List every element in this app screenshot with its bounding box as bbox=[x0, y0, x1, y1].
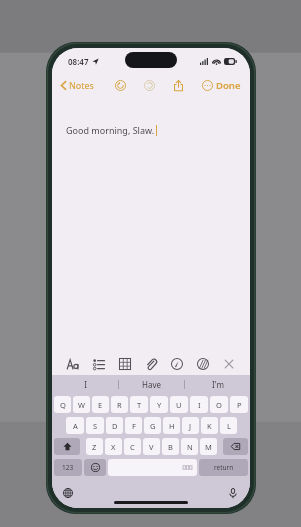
button[interactable]: More options bbox=[199, 77, 215, 93]
button[interactable]: O bbox=[210, 396, 228, 413]
button[interactable]: Y bbox=[150, 396, 168, 413]
staticText: P bbox=[237, 400, 242, 410]
staticText: Done bbox=[216, 79, 241, 92]
button[interactable]: D bbox=[106, 417, 123, 434]
staticText: Notes bbox=[69, 79, 94, 91]
staticText: H bbox=[169, 421, 175, 431]
button[interactable]: I bbox=[190, 396, 208, 413]
staticText: I bbox=[198, 400, 201, 410]
button[interactable]: Table bbox=[115, 354, 135, 374]
staticText: L bbox=[227, 421, 231, 431]
staticText: E bbox=[98, 400, 103, 410]
button[interactable]: P bbox=[230, 396, 248, 413]
button[interactable]: Dictate bbox=[225, 485, 241, 501]
button[interactable]: Shift bbox=[54, 438, 80, 455]
staticText: I bbox=[84, 379, 87, 390]
staticText: N bbox=[187, 442, 193, 452]
staticText: G bbox=[150, 421, 156, 431]
button[interactable]: 123 bbox=[54, 459, 82, 476]
button[interactable]: C bbox=[124, 438, 141, 455]
button[interactable]: F bbox=[125, 417, 142, 434]
button[interactable]: Attach bbox=[141, 354, 161, 374]
button[interactable]: I bbox=[52, 375, 118, 394]
button[interactable]: T bbox=[130, 396, 148, 413]
button[interactable]: M bbox=[200, 438, 217, 455]
button[interactable]: B bbox=[162, 438, 179, 455]
button[interactable]: N bbox=[181, 438, 198, 455]
button[interactable]: Good morning, Slaw. bbox=[52, 96, 250, 353]
button[interactable]: Redo bbox=[141, 77, 157, 93]
staticText: T bbox=[137, 400, 142, 410]
staticText: R bbox=[117, 400, 122, 410]
button[interactable]: Text format bbox=[63, 354, 83, 374]
button[interactable]: Checklist bbox=[89, 354, 109, 374]
staticText: J bbox=[189, 421, 192, 431]
button[interactable]: Share bbox=[170, 77, 186, 93]
staticText: F bbox=[132, 421, 136, 431]
button[interactable]: W bbox=[73, 396, 90, 413]
button[interactable]: Markup bbox=[167, 354, 187, 374]
button[interactable]: Close keyboard bbox=[219, 354, 239, 374]
button[interactable]: Done bbox=[207, 76, 250, 95]
button[interactable]: J bbox=[182, 417, 199, 434]
button[interactable]: Switch keyboard bbox=[60, 485, 76, 501]
button[interactable]: L bbox=[220, 417, 237, 434]
button[interactable]: Backspace bbox=[223, 438, 248, 455]
button[interactable]: R bbox=[111, 396, 128, 413]
button[interactable]: I'm bbox=[185, 375, 250, 394]
button[interactable]: Z bbox=[86, 438, 103, 455]
button[interactable]: Undo bbox=[112, 77, 128, 93]
staticText: B bbox=[168, 442, 173, 452]
button[interactable]: H bbox=[163, 417, 180, 434]
staticText: M bbox=[205, 442, 212, 452]
staticText: 123 bbox=[62, 463, 74, 472]
staticText: return bbox=[214, 463, 234, 472]
button[interactable]: S bbox=[86, 417, 104, 434]
button[interactable]: return bbox=[199, 459, 248, 476]
button[interactable]: Notes bbox=[52, 76, 100, 94]
button[interactable]: X bbox=[105, 438, 122, 455]
staticText: X bbox=[111, 442, 116, 452]
staticText: Y bbox=[157, 400, 162, 410]
button[interactable]: Draw bbox=[193, 354, 213, 374]
button[interactable]: Emoji bbox=[84, 459, 106, 476]
staticText: Good morning, Slaw. bbox=[66, 124, 155, 136]
button[interactable]: G bbox=[144, 417, 161, 434]
staticText: U bbox=[176, 400, 182, 410]
staticText: C bbox=[130, 442, 135, 452]
button[interactable]: K bbox=[201, 417, 218, 434]
button[interactable] bbox=[108, 459, 197, 476]
staticText: D bbox=[112, 421, 118, 431]
staticText: Z bbox=[92, 442, 97, 452]
button[interactable]: Have bbox=[119, 375, 184, 394]
button[interactable]: Q bbox=[54, 396, 71, 413]
button[interactable]: V bbox=[143, 438, 160, 455]
staticText: W bbox=[78, 400, 85, 410]
button[interactable]: E bbox=[92, 396, 109, 413]
staticText: V bbox=[149, 442, 154, 452]
staticText: Have bbox=[142, 379, 161, 390]
staticText: A bbox=[73, 421, 78, 431]
button[interactable]: U bbox=[170, 396, 188, 413]
button[interactable]: A bbox=[66, 417, 84, 434]
staticText: I'm bbox=[212, 379, 224, 390]
staticText: S bbox=[93, 421, 98, 431]
staticText: O bbox=[216, 400, 222, 410]
staticText: K bbox=[207, 421, 212, 431]
staticText: 08:47 bbox=[68, 56, 89, 67]
staticText: Q bbox=[60, 400, 66, 410]
